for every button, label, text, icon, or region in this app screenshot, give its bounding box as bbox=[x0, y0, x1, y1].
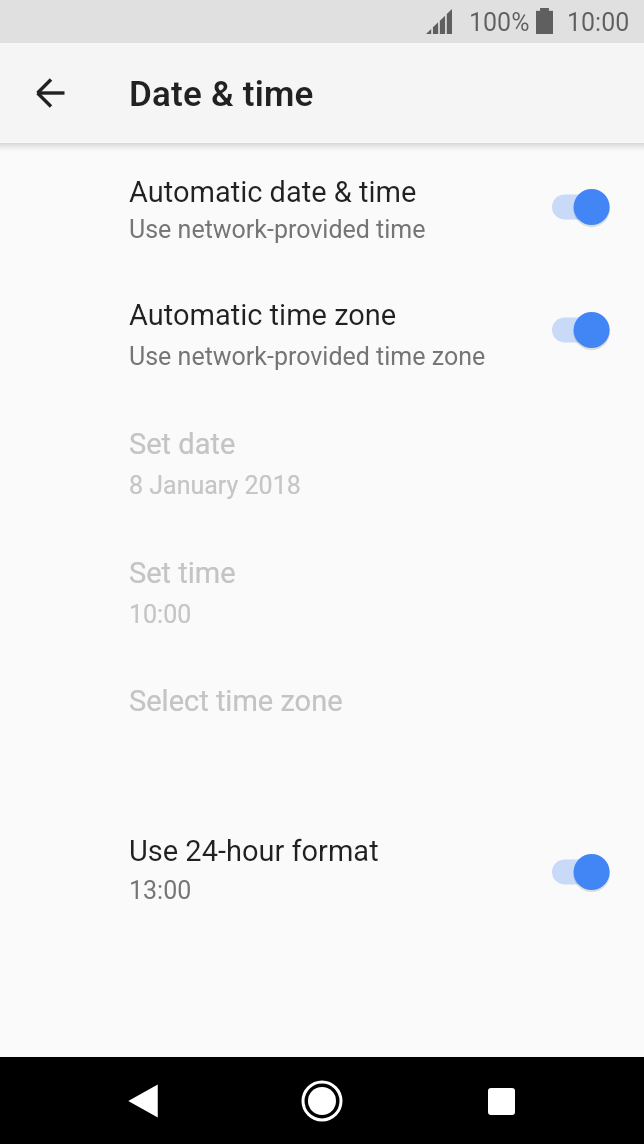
button[interactable]: Set date bbox=[0, 395, 644, 524]
staticText: 13:00 bbox=[129, 876, 192, 905]
staticText: Use 24-hour format bbox=[129, 834, 379, 868]
staticText: Select time zone bbox=[129, 684, 343, 718]
staticText: 10:00 bbox=[129, 600, 192, 629]
button[interactable]: Select time zone bbox=[0, 653, 644, 758]
button[interactable]: Back bbox=[111, 1069, 175, 1133]
button[interactable]: Home bbox=[290, 1069, 354, 1133]
staticText: Date & time bbox=[129, 74, 314, 115]
button[interactable]: Navigate up bbox=[26, 69, 74, 117]
staticText: Use network-provided time bbox=[129, 215, 426, 244]
button[interactable]: Automatic time zone bbox=[0, 267, 644, 395]
staticText: Automatic time zone bbox=[129, 298, 397, 332]
button[interactable]: Recent apps bbox=[469, 1069, 533, 1133]
staticText: Use network-provided time zone bbox=[129, 342, 486, 371]
staticText: Set date bbox=[129, 427, 236, 461]
staticText: 10:00 bbox=[567, 8, 630, 37]
staticText: Automatic date & time bbox=[129, 175, 417, 209]
button[interactable]: Automatic date & time bbox=[0, 158, 644, 267]
staticText: 8 January 2018 bbox=[129, 471, 301, 500]
button[interactable]: Set time bbox=[0, 524, 644, 653]
staticText: Set time bbox=[129, 556, 236, 590]
staticText: 100% bbox=[469, 8, 530, 37]
button[interactable]: Use 24-hour format bbox=[0, 772, 644, 946]
